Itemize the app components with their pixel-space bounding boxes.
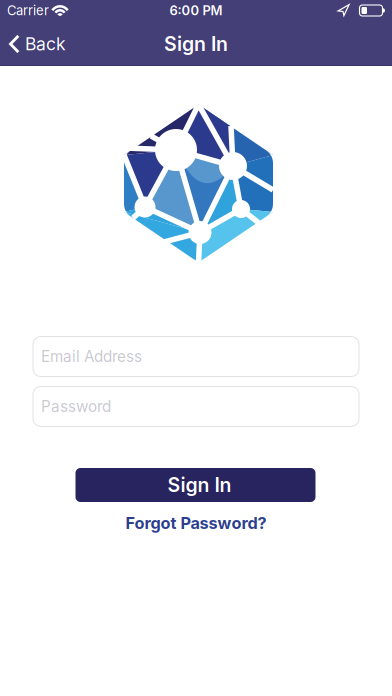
button[interactable]: Email Address	[33, 336, 359, 376]
staticText: Carrier	[7, 3, 49, 18]
staticText: Sign In	[167, 473, 231, 497]
button[interactable]: Back	[7, 33, 66, 55]
button[interactable]: Sign In	[75, 468, 315, 502]
staticText: 6:00 PM	[169, 3, 222, 18]
button[interactable]: Password	[33, 386, 359, 426]
staticText: Email Address	[41, 347, 142, 366]
button[interactable]: Forgot Password?	[125, 513, 266, 533]
staticText: Sign In	[164, 32, 228, 56]
staticText: Back	[25, 33, 66, 55]
staticText: Forgot Password?	[125, 513, 266, 533]
staticText: Password	[41, 397, 111, 416]
